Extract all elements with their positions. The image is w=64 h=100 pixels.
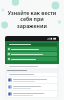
other: Раздел (8, 85, 12, 89)
button[interactable]: Раздел (7, 84, 57, 90)
button[interactable]: Раздел (7, 91, 57, 97)
button[interactable]: Раздел (7, 77, 57, 83)
button[interactable] (7, 43, 57, 46)
button[interactable] (7, 52, 57, 56)
other: Раздел (8, 92, 12, 96)
staticText: Узнайте как вести себя при заражении (5, 9, 59, 30)
button[interactable] (7, 57, 57, 61)
other: Раздел (8, 78, 12, 82)
button[interactable] (7, 47, 57, 51)
button[interactable] (7, 65, 57, 68)
button[interactable] (7, 73, 57, 76)
